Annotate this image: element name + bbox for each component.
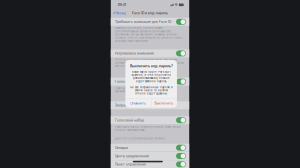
staticText: Центр уведомлений bbox=[115, 154, 149, 158]
staticText: Не все сохранённые пароли и ключи Apple … bbox=[130, 86, 173, 95]
staticText: iPhone не будет притушать экран, уменьша… bbox=[115, 58, 184, 67]
staticText: Face ID и код-пароль bbox=[132, 11, 168, 15]
staticText: Голосовой вызов bbox=[115, 80, 144, 84]
staticText: Требовать внимание для Face ID bbox=[115, 20, 171, 24]
staticText: 09:41 bbox=[118, 3, 126, 7]
staticText: ДОСТУП С БЛОКИРОВКОЙ ЭКРАНА bbox=[115, 137, 165, 140]
staticText: Разрешить голосовой набор номера с забло… bbox=[115, 87, 168, 93]
button[interactable]: Назад bbox=[111, 10, 125, 16]
staticText: Назад bbox=[115, 11, 125, 15]
staticText: Выключить bbox=[155, 101, 174, 105]
button[interactable]: Голосовой набор bbox=[111, 116, 189, 124]
button[interactable]: Голосовой вызов bbox=[111, 78, 189, 86]
staticText: Отменить bbox=[130, 101, 146, 105]
button[interactable]: Сегодня bbox=[111, 144, 189, 152]
button[interactable]: Запрос пароля bbox=[111, 101, 189, 109]
staticText: Запрос пароля bbox=[115, 103, 140, 107]
button[interactable]: Пункт управления bbox=[111, 160, 189, 168]
staticText: Регулировка внимания bbox=[115, 51, 154, 55]
button[interactable]: Выключить bbox=[151, 99, 177, 108]
staticText: Выключить код-пароль? bbox=[130, 64, 173, 68]
staticText: Разрешить набор номера голосом, даже ког… bbox=[115, 125, 180, 132]
staticText: Пункт управления bbox=[115, 162, 146, 166]
staticText: Камера TrueDepth обеспечивает дополнител… bbox=[115, 27, 183, 42]
staticText: Ваши карты Apple Pay будут удалены, и он… bbox=[131, 70, 171, 83]
button[interactable]: Регулировка внимания bbox=[111, 49, 189, 57]
staticText: Голосовой набор bbox=[115, 118, 144, 122]
button[interactable]: Требовать внимание для Face ID bbox=[111, 18, 189, 26]
staticText: Сегодня bbox=[115, 146, 128, 150]
button[interactable]: Центр уведомлений bbox=[111, 152, 189, 160]
button[interactable]: Отменить bbox=[125, 99, 151, 108]
